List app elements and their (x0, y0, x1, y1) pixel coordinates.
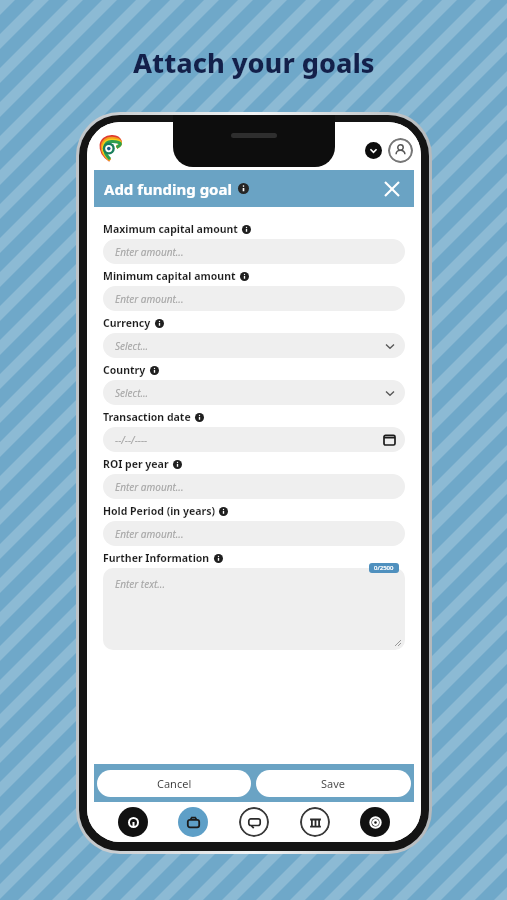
button[interactable]: Save (256, 770, 411, 797)
button[interactable]: Enter amount... (103, 239, 405, 264)
button[interactable]: Cancel (97, 770, 251, 797)
button[interactable]: Messages (239, 807, 269, 837)
button[interactable]: Expand menu (365, 142, 382, 159)
staticText: Enter amount... (115, 292, 184, 306)
button[interactable]: Profile (360, 807, 390, 837)
staticText: Currency (103, 316, 151, 330)
staticText: Add funding goal (104, 179, 232, 199)
staticText: Select... (115, 339, 149, 353)
button[interactable]: Enter amount... (103, 474, 405, 499)
staticText: Transaction date (103, 410, 191, 424)
staticText: Select... (115, 386, 149, 400)
staticText: Cancel (157, 776, 192, 791)
button[interactable]: Select... (103, 333, 405, 358)
button[interactable]: Select... (103, 380, 405, 405)
button[interactable]: Help (118, 807, 148, 837)
button[interactable]: Enter amount... (103, 286, 405, 311)
button[interactable]: Close (380, 177, 404, 201)
staticText: Further Information (103, 551, 210, 565)
button[interactable]: Portfolio (300, 807, 330, 837)
staticText: Save (321, 776, 346, 791)
staticText: Minimum capital amount (103, 269, 236, 283)
button[interactable]: Projects (178, 807, 208, 837)
staticText: Enter amount... (115, 480, 184, 494)
staticText: Enter amount... (115, 527, 184, 541)
staticText: Attach your goals (133, 44, 375, 81)
button[interactable]: Account (388, 138, 413, 163)
staticText: Enter text... (115, 577, 165, 591)
button[interactable]: --/--/---- (103, 427, 405, 452)
button[interactable]: Enter amount... (103, 521, 405, 546)
staticText: ROI per year (103, 457, 169, 471)
staticText: Hold Period (in years) (103, 504, 215, 518)
button[interactable]: Enter text... (103, 568, 405, 650)
staticText: 0/2500 (374, 564, 394, 572)
staticText: --/--/---- (115, 433, 148, 447)
staticText: Country (103, 363, 146, 377)
staticText: Maximum capital amount (103, 222, 238, 236)
staticText: Enter amount... (115, 245, 184, 259)
